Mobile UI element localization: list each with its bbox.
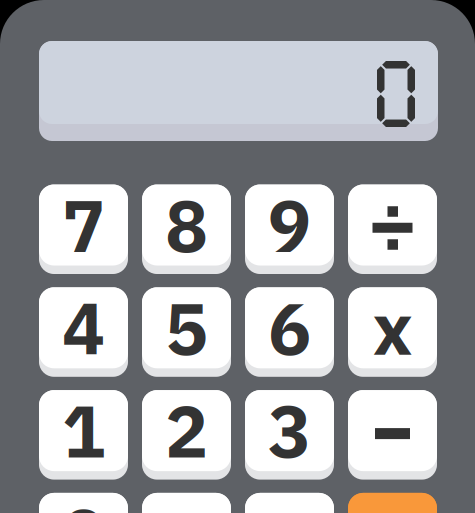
staticText: x — [372, 281, 412, 375]
staticText: 7 — [62, 178, 105, 272]
button[interactable]: 6 — [245, 287, 334, 377]
staticText: 5 — [165, 281, 208, 375]
staticText: 6 — [268, 281, 311, 375]
button[interactable]: 8 — [142, 184, 231, 274]
staticText: 2 — [165, 384, 208, 477]
button[interactable]: 5 — [142, 287, 231, 377]
button[interactable]: 2 — [142, 390, 231, 480]
staticText: = — [268, 487, 311, 513]
button[interactable]: 9 — [245, 184, 334, 274]
staticText: 8 — [165, 178, 208, 272]
button[interactable]: 1 — [39, 390, 128, 480]
button[interactable]: 7 — [39, 184, 128, 274]
button[interactable]: Plus — [348, 493, 437, 513]
button[interactable]: 0 — [39, 493, 128, 513]
button[interactable]: Equals — [245, 493, 334, 513]
button[interactable]: Decimal point — [142, 493, 231, 513]
button[interactable]: 4 — [39, 287, 128, 377]
staticText: 9 — [268, 178, 311, 272]
staticText: 3 — [268, 384, 311, 477]
staticText: . — [175, 487, 197, 513]
staticText: 4 — [62, 281, 105, 375]
button[interactable]: 3 — [245, 390, 334, 480]
button[interactable]: Divide — [348, 184, 437, 274]
staticText: 0 — [62, 487, 105, 513]
staticText: 1 — [62, 384, 105, 477]
button[interactable]: Multiply — [348, 287, 437, 377]
button[interactable]: Minus — [348, 390, 437, 480]
